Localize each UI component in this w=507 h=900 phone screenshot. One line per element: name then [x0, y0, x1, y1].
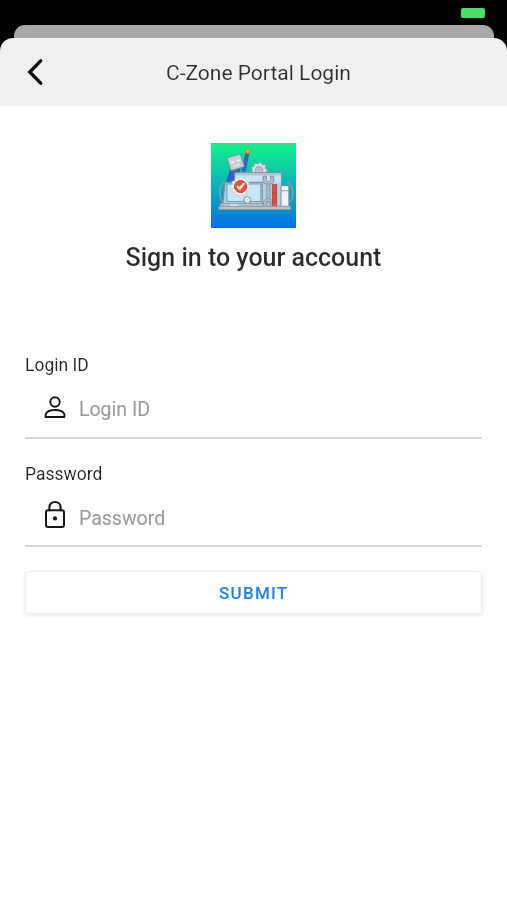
- button[interactable]: SUBMIT: [25, 571, 482, 614]
- staticText: Password: [25, 464, 103, 485]
- button[interactable]: Password: [25, 496, 482, 544]
- staticText: Password: [79, 507, 166, 530]
- staticText: Sign in to your account: [0, 243, 507, 272]
- button[interactable]: Back: [14, 50, 58, 94]
- staticText: SUBMIT: [219, 583, 289, 603]
- staticText: Login ID: [79, 398, 151, 421]
- staticText: C-Zone Portal Login: [166, 61, 351, 86]
- staticText: Login ID: [25, 355, 89, 376]
- button[interactable]: Login ID: [25, 388, 482, 436]
